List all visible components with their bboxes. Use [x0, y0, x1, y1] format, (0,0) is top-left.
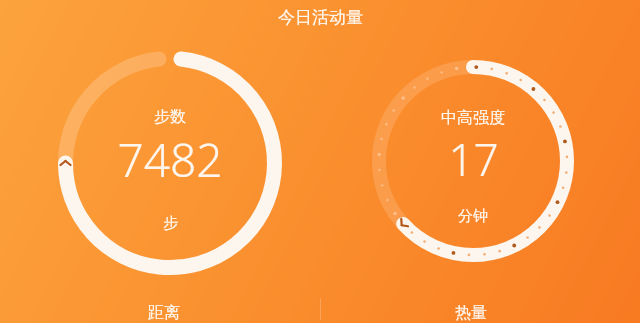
staticText: 分钟: [458, 207, 488, 226]
button[interactable]: 中高强度 17 分钟: [370, 58, 576, 264]
button[interactable]: 步数 7482 步: [56, 49, 284, 277]
staticText: 17: [448, 129, 499, 189]
button[interactable]: 热量: [455, 303, 487, 323]
staticText: 7482: [117, 128, 223, 191]
button[interactable]: 距离: [148, 303, 180, 323]
staticText: 今日活动量: [278, 7, 363, 28]
staticText: 步数: [154, 107, 186, 127]
staticText: 中高强度: [441, 108, 505, 128]
staticText: 步: [163, 214, 178, 233]
staticText: 热量: [455, 303, 487, 323]
staticText: 距离: [148, 303, 180, 323]
